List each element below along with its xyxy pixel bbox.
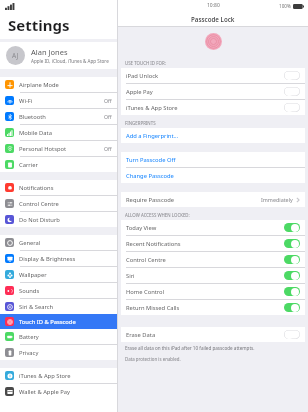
staticText: Require Passcode [126,196,175,204]
button[interactable]: Touch ID & Passcode [0,314,117,329]
button[interactable]: Toggle off [284,330,300,339]
staticText: 100% [279,3,291,9]
button[interactable]: Toggle on [284,287,300,296]
staticText: Do Not Disturb [19,216,60,224]
staticText: Home Control [126,288,165,296]
button[interactable]: Toggle on [284,271,300,280]
staticText: Apple Pay [126,88,153,96]
button[interactable]: iPad Unlock [121,68,305,83]
staticText: Personal Hotspot [19,145,67,153]
staticText: Bluetooth [19,113,46,121]
button[interactable]: Control Centre [121,252,305,267]
button[interactable]: Toggle off [284,103,300,112]
staticText: Display & Brightness [19,255,76,263]
button[interactable]: Personal Hotspot [0,141,117,156]
button[interactable]: Bluetooth [0,109,117,124]
button[interactable]: Carrier [0,157,117,172]
button[interactable]: Mobile Data [0,125,117,140]
button[interactable]: iTunes & App Store [121,100,305,115]
button[interactable]: Toggle on [284,223,300,232]
staticText: Touch ID & Passcode [19,318,76,326]
button[interactable]: Do Not Disturb [0,212,117,227]
staticText: Off [104,145,112,152]
button[interactable]: Display & Brightness [0,251,117,266]
button[interactable]: Toggle on [284,255,300,264]
button[interactable]: iTunes & App Store [0,368,117,383]
button[interactable]: Apple Pay [121,84,305,99]
button[interactable]: Privacy [0,345,117,360]
staticText: Wallet & Apple Pay [19,388,70,396]
staticText: Siri [126,272,135,280]
button[interactable]: Home Control [121,284,305,299]
staticText: ALLOW ACCESS WHEN LOCKED: [125,212,190,218]
staticText: Change Passcode [126,172,174,180]
button[interactable]: Toggle on [284,239,300,248]
staticText: Today View [126,224,157,232]
staticText: Control Centre [19,200,59,208]
staticText: Erase Data [126,331,156,339]
button[interactable]: Return Missed Calls [121,300,305,315]
staticText: Turn Passcode Off [126,156,176,164]
staticText: Carrier [19,161,38,169]
staticText: Off [104,113,112,120]
staticText: Airplane Mode [19,81,59,89]
staticText: Off [104,97,112,104]
staticText: Erase all data on this iPad after 10 fai… [125,345,255,351]
button[interactable]: AJ [0,42,117,69]
staticText: General [19,239,41,247]
button[interactable]: Sounds [0,283,117,298]
staticText: Return Missed Calls [126,304,180,312]
button[interactable]: Toggle off [284,71,300,80]
button[interactable]: Erase Data [121,327,305,342]
staticText: AJ [12,51,19,60]
button[interactable]: General [0,235,117,250]
staticText: Battery [19,333,39,341]
button[interactable]: Control Centre [0,196,117,211]
staticText: Data protection is enabled. [125,356,181,362]
staticText: Mobile Data [19,129,52,137]
button[interactable]: Toggle off [284,87,300,96]
staticText: USE TOUCH ID FOR: [125,60,166,66]
staticText: iTunes & App Store [19,372,71,380]
button[interactable]: Wallet & Apple Pay [0,384,117,399]
staticText: Immediately [261,196,293,203]
staticText: Apple ID, iCloud, iTunes & App Store [31,58,109,64]
staticText: FINGERPRINTS [125,120,156,126]
staticText: Add a Fingerprint... [126,132,179,140]
button[interactable]: Today View [121,220,305,235]
staticText: Settings [8,15,70,35]
button[interactable]: Toggle on [284,303,300,312]
button[interactable]: Wallpaper [0,267,117,282]
staticText: iPad Unlock [126,72,159,80]
button[interactable]: Battery [0,329,117,344]
button[interactable]: Require Passcode [121,192,305,207]
staticText: Privacy [19,349,39,357]
staticText: 10:80 [207,2,220,9]
staticText: Passcode Lock [191,15,235,23]
button[interactable]: Wi-Fi [0,93,117,108]
button[interactable]: Turn Passcode Off [121,152,305,167]
staticText: Wi-Fi [19,97,33,105]
button[interactable]: Change Passcode [121,168,305,183]
staticText: Wallpaper [19,271,47,279]
staticText: Recent Notifications [126,240,181,248]
button[interactable]: Siri & Search [0,299,117,314]
button[interactable]: Add a Fingerprint... [121,128,305,143]
button[interactable]: Airplane Mode [0,77,117,92]
staticText: Sounds [19,287,40,295]
staticText: Alan Jones [31,47,68,57]
button[interactable]: Recent Notifications [121,236,305,251]
staticText: Siri & Search [19,303,54,311]
staticText: Notifications [19,184,54,192]
button[interactable]: Siri [121,268,305,283]
staticText: Control Centre [126,256,166,264]
staticText: iTunes & App Store [126,104,178,112]
button[interactable]: Notifications [0,180,117,195]
